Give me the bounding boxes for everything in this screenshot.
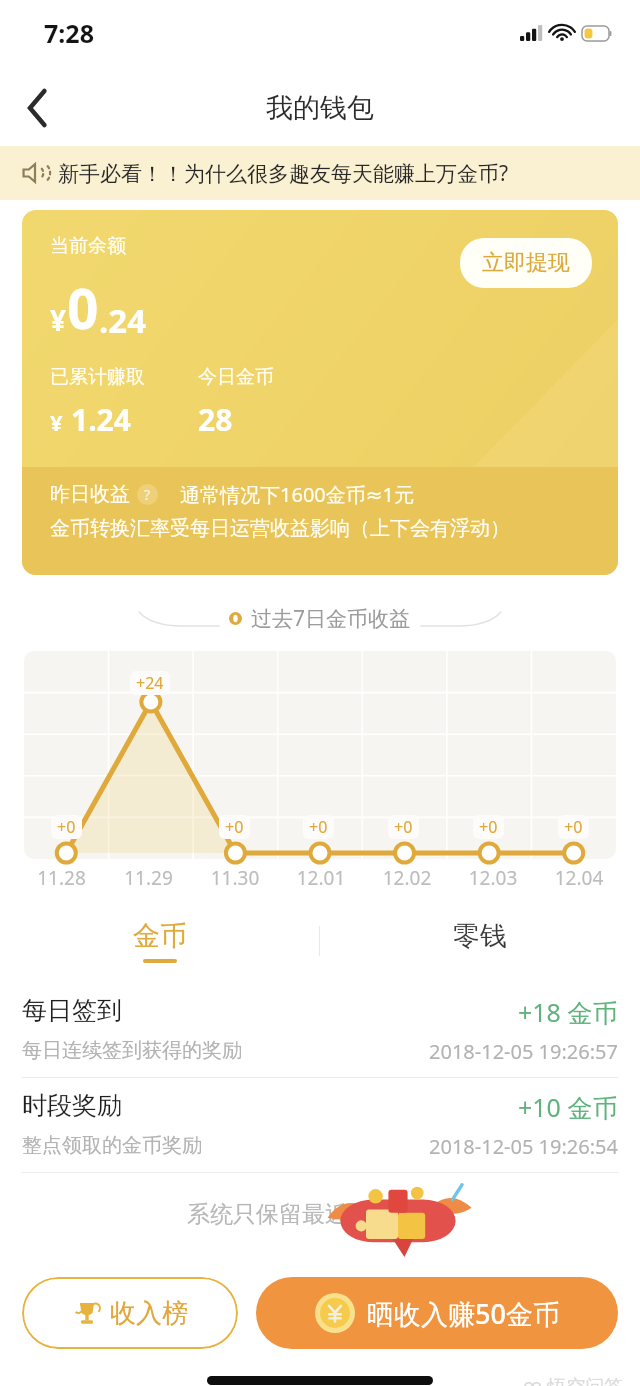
staticText: +0 [57,816,76,838]
button[interactable]: 金币 [0,905,319,977]
staticText: 整点领取的金币奖励 [22,1133,202,1158]
staticText: 12.02 [364,865,450,891]
staticText: 11.28 [18,865,105,891]
staticText: 每日连续签到获得的奖励 [22,1038,242,1063]
staticText: 2018-12-05 19:26:54 [429,1133,618,1160]
staticText: 每日签到 [22,995,122,1026]
button[interactable]: Back [0,70,76,146]
staticText: +0 [225,816,244,838]
button[interactable]: 当前余额 [22,210,618,575]
staticText: ꚙ 悟空问答 [523,1373,624,1386]
staticText: 过去7日金币收益 [251,604,411,633]
staticText: +10 金币 [518,1090,618,1124]
staticText: 时段奖励 [22,1090,122,1121]
staticText: 系统只保留最近3天的收入 [187,1197,454,1228]
staticText: 新手必看！！为什么很多趣友每天能赚上万金币? [58,159,509,188]
staticText: ¥ [50,407,63,437]
staticText: 今日金币 [198,365,274,389]
staticText: +24 [136,672,164,694]
button[interactable]: 晒收入赚50金币 [256,1277,618,1349]
staticText: +18 金币 [518,995,618,1029]
button[interactable]: 每日签到 [0,983,640,1077]
staticText: 金币转换汇率受每日运营收益影响（上下会有浮动） [50,516,510,541]
staticText: 2018-12-05 19:26:57 [429,1038,618,1065]
button[interactable]: 收入榜 [22,1277,238,1349]
staticText: 28 [198,399,233,440]
staticText: +0 [564,816,583,838]
staticText: 通常情况下1600金币≈1元 [180,481,414,508]
staticText: 已累计赚取 [50,365,145,389]
button[interactable]: 时段奖励 [0,1078,640,1172]
staticText: 晒收入赚50金币 [367,1295,560,1332]
staticText: 昨日收益 [50,482,130,507]
staticText: 0 [67,270,99,345]
staticText: 12.03 [450,865,536,891]
button[interactable]: 零钱 [320,905,640,977]
staticText: +0 [479,816,498,838]
button[interactable]: 立即提现 [460,238,592,288]
staticText: +0 [394,816,413,838]
staticText: 11.29 [105,865,192,891]
staticText: ? [144,485,151,504]
staticText: 当前余额 [50,234,126,258]
staticText: 12.01 [278,865,364,891]
staticText: 我的钱包 [266,91,374,125]
button[interactable]: 新手必看！！为什么很多趣友每天能赚上万金币? [0,146,640,200]
staticText: 12.04 [536,865,622,891]
staticText: 7:28 [44,16,94,50]
staticText: +0 [309,816,328,838]
staticText: 金币 [133,919,187,953]
staticText: 立即提现 [482,249,570,277]
button[interactable]: Help [137,484,158,505]
staticText: 11.30 [192,865,278,891]
staticText: 1.24 [71,399,131,440]
staticText: 收入榜 [110,1297,188,1330]
staticText: 零钱 [453,919,507,953]
staticText: .24 [99,298,147,343]
staticText: ¥ [50,301,67,339]
